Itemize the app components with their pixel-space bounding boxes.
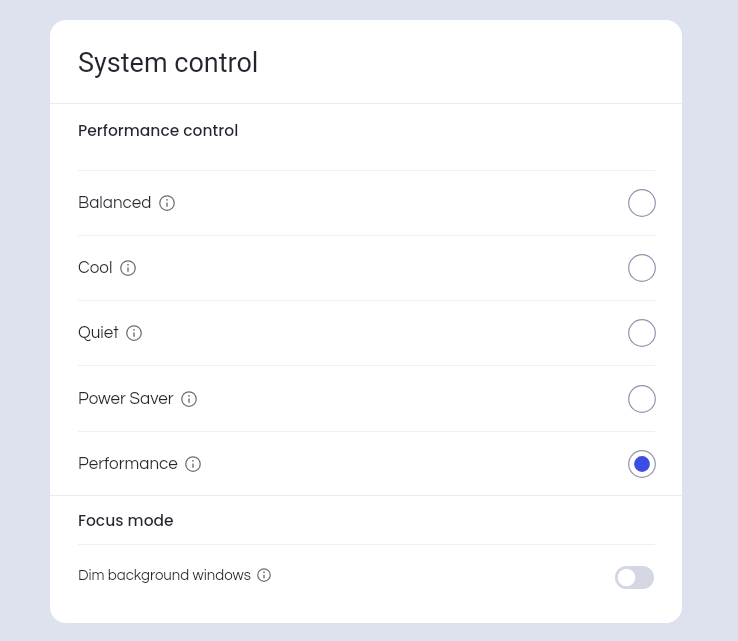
other: About Cool [120,260,136,276]
other: About Balanced [159,195,175,211]
button[interactable]: Dim background windows [50,543,682,607]
button[interactable]: Power Saver [50,366,682,431]
other: About dim background windows [257,568,271,582]
button[interactable]: Performance [50,431,682,496]
staticText: Cool [78,259,113,277]
button[interactable]: Quiet [50,300,682,365]
staticText: Balanced [78,194,152,212]
staticText: Dim background windows [78,568,251,583]
staticText: Performance control [78,120,239,142]
staticText: Focus mode [78,510,174,532]
other: About Performance [185,456,201,472]
staticText: Performance [78,455,178,473]
button[interactable]: Balanced [50,170,682,235]
button[interactable]: Cool [50,235,682,300]
staticText: System control [78,47,259,79]
staticText: Power Saver [78,390,174,408]
other: About Quiet [126,325,142,341]
staticText: Quiet [78,324,119,342]
other: About Power Saver [181,391,197,407]
